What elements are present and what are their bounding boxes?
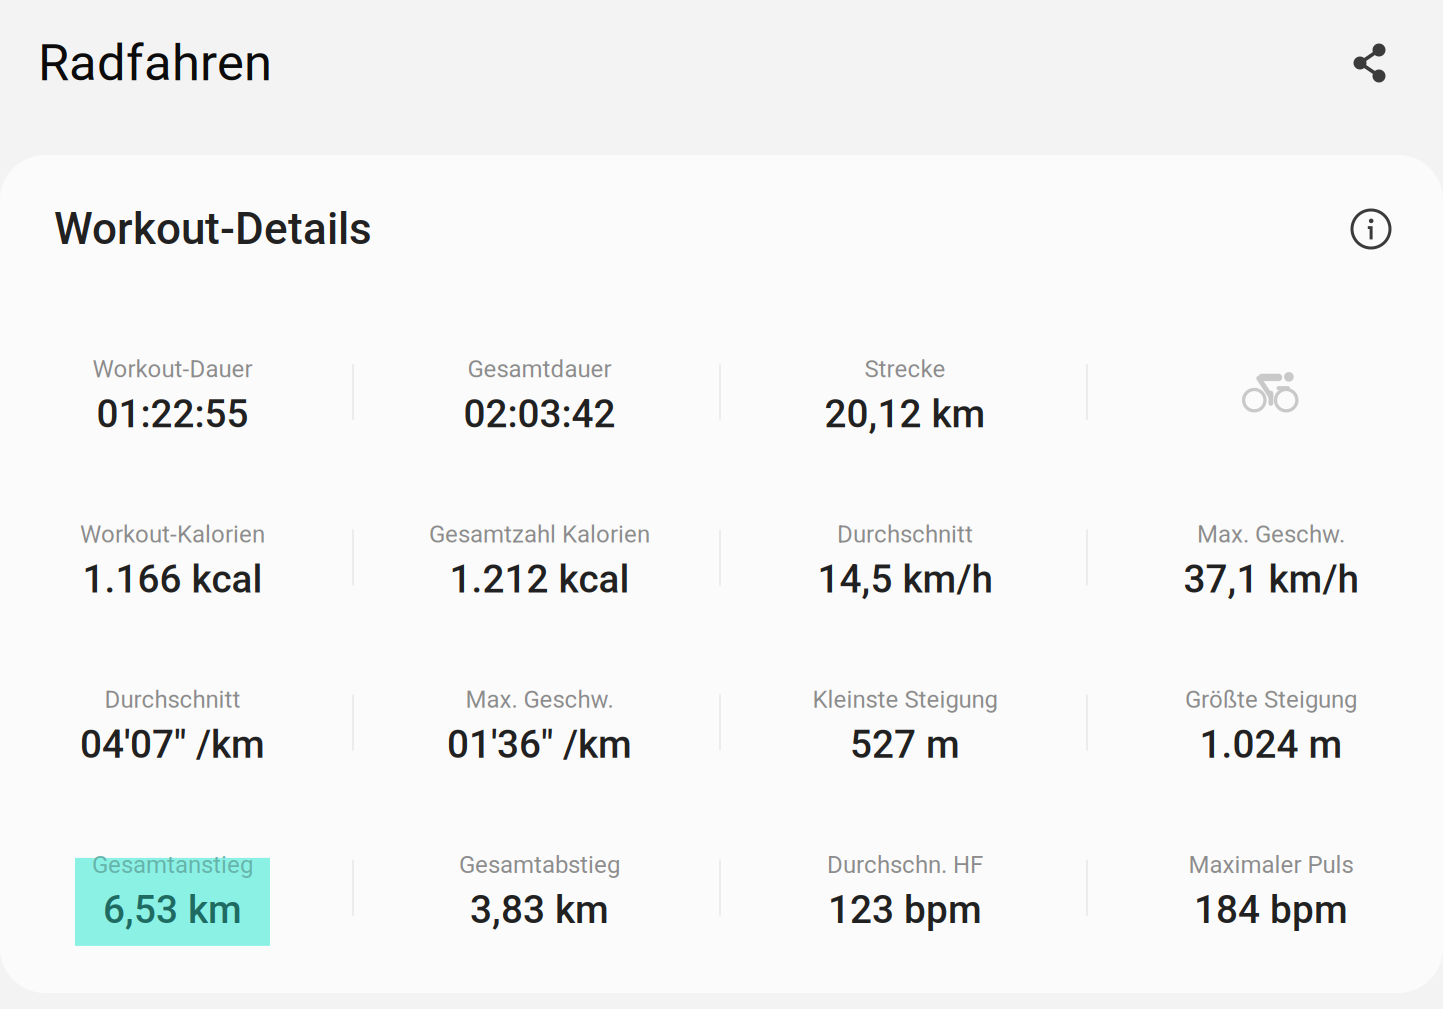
staticText: 20,12 km — [824, 391, 985, 437]
staticText: Durchschn. HF — [827, 851, 983, 879]
staticText: 1.212 kcal — [449, 557, 629, 602]
staticText: 01'36" /km — [447, 722, 632, 767]
staticText: Max. Geschw. — [1197, 520, 1345, 548]
staticText: 184 bpm — [1194, 887, 1348, 932]
staticText: Workout-Details — [54, 203, 372, 255]
staticText: Durchschnitt — [104, 685, 240, 714]
staticText: Maximaler Puls — [1188, 851, 1353, 879]
staticText: Workout-Kalorien — [80, 520, 265, 548]
staticText: Workout-Dauer — [92, 355, 252, 383]
staticText: Strecke — [864, 355, 945, 383]
staticText: Gesamtzahl Kalorien — [429, 520, 650, 548]
staticText: 04'07" /km — [80, 722, 265, 767]
staticText: Gesamtdauer — [467, 355, 611, 383]
button[interactable]: Teilen — [1325, 18, 1415, 108]
staticText: Gesamtanstieg — [92, 851, 253, 879]
staticText: 3,83 km — [470, 887, 609, 932]
staticText: 527 m — [850, 722, 960, 767]
staticText: Radfahren — [38, 33, 272, 93]
staticText: Durchschnitt — [837, 520, 973, 548]
staticText: Gesamtabstieg — [459, 851, 620, 879]
staticText: 02:03:42 — [463, 391, 615, 437]
button[interactable]: Information — [1338, 196, 1404, 262]
staticText: 37,1 km/h — [1183, 557, 1358, 602]
staticText: 1.166 kcal — [82, 557, 262, 602]
staticText: 14,5 km/h — [817, 557, 992, 602]
staticText: 6,53 km — [103, 887, 242, 932]
staticText: 1.024 m — [1199, 722, 1342, 767]
staticText: Kleinste Steigung — [812, 685, 997, 714]
staticText: 123 bpm — [828, 887, 982, 932]
staticText: Größte Steigung — [1185, 685, 1357, 714]
staticText: Max. Geschw. — [465, 685, 613, 714]
staticText: 01:22:55 — [96, 391, 248, 437]
